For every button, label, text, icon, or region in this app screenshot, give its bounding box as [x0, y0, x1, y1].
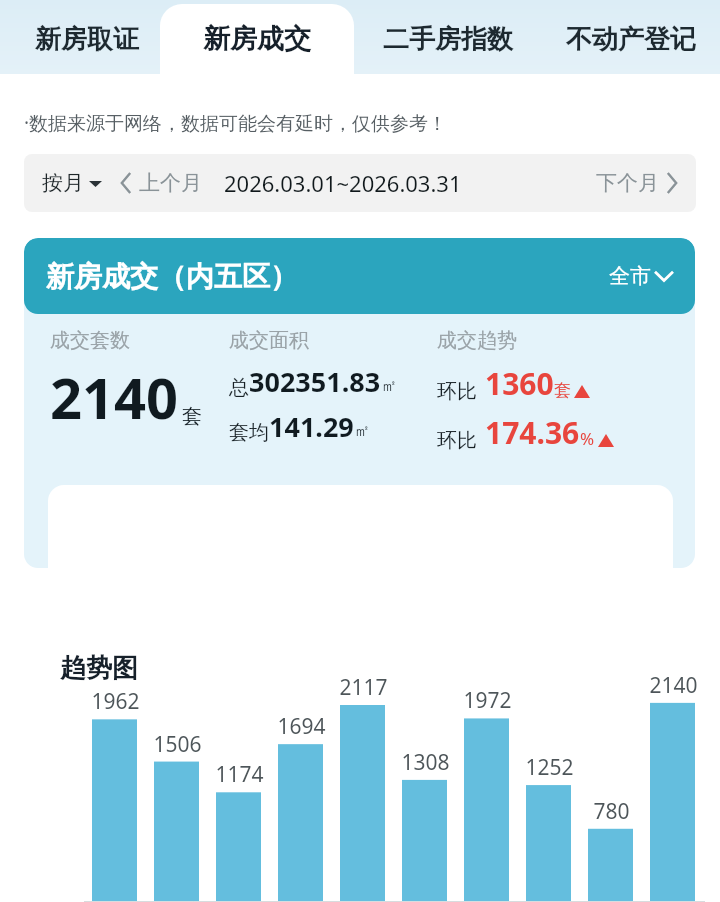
staticText: 2026.03.01~2026.03.31: [224, 168, 462, 198]
staticText: 二手房指数: [383, 23, 513, 56]
staticText: 2140: [649, 671, 698, 700]
staticText: 2025-10: [336, 897, 390, 902]
staticText: 2025-12: [460, 897, 514, 902]
staticText: 2140: [50, 359, 179, 435]
staticText: ㎡: [354, 421, 370, 441]
staticText: 全市: [609, 263, 651, 289]
staticText: 环比: [437, 428, 477, 453]
staticText: 174.36: [485, 412, 580, 453]
staticText: 1962: [91, 687, 140, 716]
staticText: %: [580, 427, 595, 450]
button[interactable]: 新房成交: [160, 4, 354, 74]
staticText: 1506: [153, 730, 202, 759]
staticText: 套均: [229, 420, 269, 445]
staticText: 成交面积: [229, 328, 309, 353]
button[interactable]: 上个月: [120, 170, 202, 196]
button[interactable]: 新房取证: [14, 4, 160, 74]
staticText: 总: [229, 375, 249, 400]
staticText: 环比: [437, 379, 477, 404]
staticText: ·数据来源于网络，数据可能会有延时，仅供参考！: [24, 110, 448, 136]
staticText: 1972: [463, 686, 512, 715]
staticText: 套: [182, 404, 202, 429]
staticText: 不动产登记: [566, 23, 696, 56]
button[interactable]: 按月: [42, 170, 102, 196]
staticText: 1252: [525, 753, 574, 782]
staticText: 2025-08: [212, 897, 266, 902]
staticText: 2025-11: [398, 897, 452, 902]
staticText: 下个月: [596, 170, 659, 196]
staticText: 成交趋势: [437, 328, 517, 353]
staticText: 1308: [401, 748, 450, 777]
staticText: 2026-01: [522, 897, 576, 902]
button[interactable]: 全市: [609, 263, 673, 289]
button[interactable]: 二手房指数: [356, 4, 540, 74]
staticText: 141.29: [269, 408, 354, 445]
staticText: 新房成交: [203, 22, 311, 56]
staticText: 2025-09: [274, 897, 328, 902]
staticText: 成交套数: [50, 328, 130, 353]
staticText: 趋势图: [60, 652, 138, 685]
staticText: 2025-07: [150, 897, 204, 902]
staticText: 套: [554, 380, 571, 401]
staticText: 1694: [277, 712, 326, 741]
staticText: 新房成交（内五区）: [46, 259, 298, 294]
staticText: 2026-02: [584, 897, 638, 902]
staticText: 302351.83: [249, 363, 381, 400]
staticText: 按月: [42, 170, 84, 196]
staticText: 780: [593, 797, 630, 826]
button[interactable]: 不动产登记: [542, 4, 720, 74]
staticText: 新房取证: [35, 23, 139, 56]
staticText: 2025-06: [88, 897, 142, 902]
staticText: ㎡: [381, 376, 397, 396]
staticText: 2117: [339, 673, 388, 702]
staticText: 2026-03: [646, 897, 700, 902]
button[interactable]: 下个月: [596, 170, 678, 196]
staticText: 1360: [485, 363, 554, 404]
staticText: 上个月: [139, 170, 202, 196]
staticText: 1174: [215, 760, 264, 789]
